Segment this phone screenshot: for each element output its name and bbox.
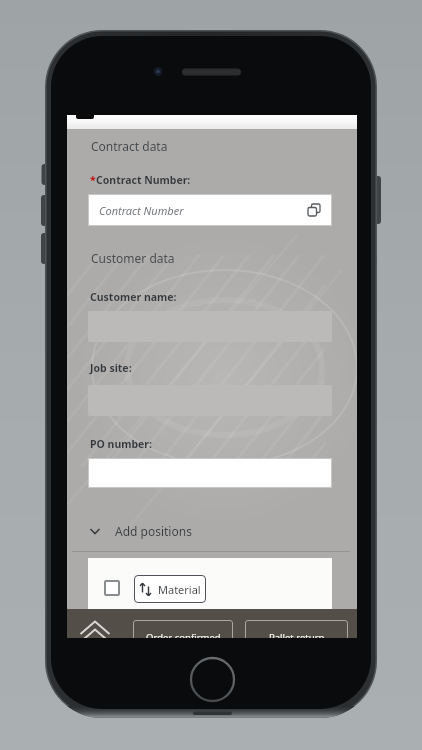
staticText: Contract Number: (96, 173, 191, 187)
staticText: Material (158, 582, 201, 597)
staticText: Order confirmed (146, 631, 221, 638)
button[interactable]: Pallet return (245, 620, 348, 638)
staticText: Job site: (90, 361, 132, 375)
button[interactable]: Add positions (89, 523, 192, 539)
staticText: Contract Number (99, 203, 184, 218)
button[interactable] (104, 580, 120, 596)
button[interactable]: Order confirmed (133, 620, 233, 638)
staticText: Customer name: (90, 290, 177, 304)
staticText: PO number: (90, 437, 152, 451)
staticText: Add positions (115, 523, 192, 539)
staticText: Pallet return (269, 631, 325, 638)
staticText: Contract data (91, 138, 168, 154)
button[interactable]: Material (134, 575, 206, 603)
button[interactable]: Contract Number (88, 194, 332, 226)
button[interactable] (79, 619, 111, 638)
staticText: * (90, 173, 96, 187)
button[interactable] (88, 458, 332, 488)
staticText: Customer data (91, 250, 175, 266)
